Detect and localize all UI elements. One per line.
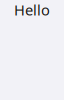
staticText: Hello	[14, 0, 50, 19]
